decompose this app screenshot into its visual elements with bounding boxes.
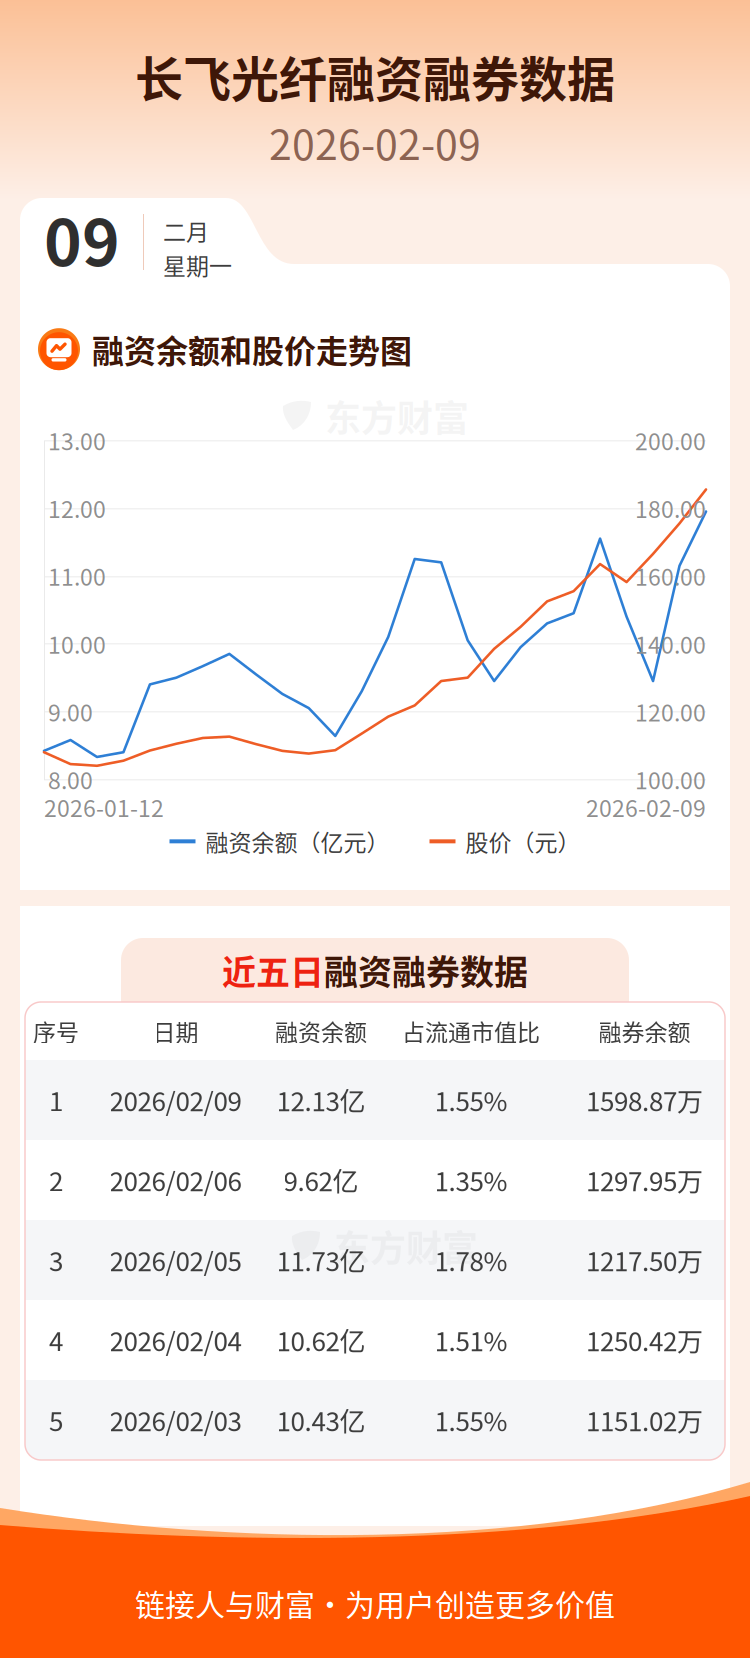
staticText: 股价（元） (465, 825, 580, 858)
staticText: 1 (49, 1081, 63, 1119)
staticText: 2026/02/04 (109, 1321, 241, 1359)
staticText: 1297.95万 (586, 1161, 703, 1199)
staticText: 2026/02/06 (109, 1161, 241, 1199)
staticText: 200.00 (635, 424, 706, 457)
staticText: 4 (49, 1321, 63, 1359)
staticText: 融资余额 (275, 1014, 367, 1048)
staticText: 东方财富 (334, 1220, 478, 1272)
staticText: 11.73亿 (276, 1241, 365, 1279)
staticText: 2026/02/03 (109, 1401, 241, 1439)
staticText: 1217.50万 (586, 1241, 703, 1279)
staticText: 星期一 (163, 248, 232, 281)
staticText: 日期 (152, 1014, 198, 1048)
staticText: 2026-02-09 (586, 790, 706, 824)
staticText: 13.00 (48, 424, 106, 457)
staticText: 东方财富 (325, 390, 469, 442)
staticText: 2026-02-09 (269, 112, 481, 172)
staticText: 12.13亿 (276, 1081, 365, 1119)
staticText: 100.00 (635, 763, 706, 796)
staticText: 2026/02/09 (109, 1081, 241, 1119)
staticText: 链接人与财富·为用户创造更多价值 (135, 1581, 615, 1625)
staticText: 3 (49, 1241, 63, 1279)
staticText: 长飞光纤融资融券数据 (135, 41, 615, 111)
staticText: 9.00 (48, 695, 93, 728)
staticText: 1.35% (434, 1161, 507, 1199)
staticText: 1.51% (434, 1321, 507, 1359)
staticText: 1.55% (434, 1401, 507, 1439)
staticText: 2026/02/05 (109, 1241, 241, 1279)
staticText: 8.00 (48, 763, 93, 796)
staticText: 1.78% (434, 1241, 507, 1279)
staticText: 二月 (163, 214, 209, 247)
staticText: 11.00 (48, 559, 106, 592)
staticText: 近五日 (222, 945, 324, 995)
staticText: 10.43亿 (276, 1401, 365, 1439)
staticText: 融券余额 (598, 1014, 690, 1048)
staticText: 1151.02万 (586, 1401, 703, 1439)
staticText: 序号 (33, 1014, 79, 1048)
staticText: 融资余额和股价走势图 (92, 326, 412, 372)
staticText: 5 (49, 1401, 63, 1439)
staticText: 180.00 (635, 491, 706, 525)
staticText: 2 (49, 1161, 63, 1199)
staticText: 2026-01-12 (44, 790, 164, 824)
staticText: 10.00 (48, 627, 106, 660)
staticText: 120.00 (635, 695, 706, 728)
staticText: 12.00 (48, 491, 106, 525)
staticText: 09 (44, 192, 120, 284)
staticText: 占流通市值比 (402, 1014, 540, 1048)
staticText: 9.62亿 (283, 1161, 358, 1199)
staticText: 融资余额（亿元） (205, 825, 389, 858)
staticText: 160.00 (635, 559, 706, 592)
staticText: 140.00 (635, 627, 706, 660)
staticText: 1.55% (434, 1081, 507, 1119)
staticText: 10.62亿 (276, 1321, 365, 1359)
staticText: 1598.87万 (586, 1081, 703, 1119)
staticText: 1250.42万 (586, 1321, 703, 1359)
staticText: 融资融券数据 (324, 945, 528, 995)
